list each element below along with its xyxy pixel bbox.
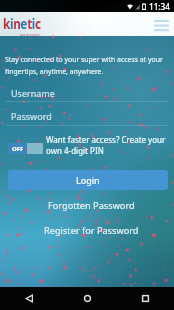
button[interactable]: PIN toggle off [8, 143, 43, 154]
staticText: i [10, 13, 13, 33]
staticText: superannuation [19, 33, 40, 37]
staticText: Forgotten Password [48, 199, 135, 212]
staticText: c [35, 13, 40, 33]
staticText: Register for Password [44, 224, 139, 237]
button[interactable]: Login [8, 170, 168, 190]
staticText: Stay connected to your super with access… [5, 55, 171, 76]
staticText: OFF [12, 145, 24, 153]
staticText: 11:34 [149, 1, 170, 12]
staticText: Password [11, 110, 52, 122]
staticText: Want faster access? Create your own 4-di… [46, 134, 168, 156]
staticText: Username [11, 87, 55, 99]
staticText: t [27, 13, 32, 33]
staticText: n [13, 13, 20, 33]
button[interactable]: Menu [154, 19, 169, 30]
staticText: Login [76, 174, 100, 186]
staticText: i [32, 13, 35, 33]
button[interactable]: Back [0, 287, 58, 310]
staticText: e [20, 13, 27, 33]
button[interactable]: Forgotten Password [4, 197, 174, 213]
staticText: k [3, 13, 10, 33]
button[interactable]: Register for Password [4, 222, 174, 238]
button[interactable]: Home [58, 287, 116, 310]
button[interactable]: Recents [116, 287, 174, 310]
